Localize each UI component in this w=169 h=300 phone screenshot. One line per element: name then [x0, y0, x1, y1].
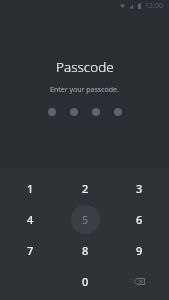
button[interactable]: 2 — [58, 173, 112, 204]
staticText: 4 — [27, 212, 34, 227]
button[interactable]: 7 — [3, 235, 58, 266]
staticText: 1 — [27, 181, 34, 196]
button[interactable]: 4 — [3, 204, 58, 235]
button[interactable]: 6 — [112, 204, 166, 235]
staticText: 12:00 — [145, 1, 163, 11]
staticText: 2 — [82, 181, 89, 196]
staticText: 8 — [82, 243, 89, 258]
staticText: 5 — [82, 212, 89, 227]
button[interactable]: 3 — [112, 173, 166, 204]
button[interactable]: 1 — [3, 173, 58, 204]
staticText: Passcode — [56, 58, 114, 76]
staticText: 0 — [82, 274, 89, 289]
staticText: 9 — [136, 243, 143, 258]
staticText: Enter your passcode. — [50, 85, 119, 95]
staticText: 7 — [27, 243, 34, 258]
button[interactable]: Delete — [112, 266, 166, 297]
staticText: 3 — [136, 181, 143, 196]
button[interactable]: 8 — [58, 235, 112, 266]
button[interactable]: 0 — [58, 266, 112, 297]
staticText: 6 — [136, 212, 143, 227]
button[interactable]: 9 — [112, 235, 166, 266]
button[interactable]: 5 — [58, 204, 112, 235]
